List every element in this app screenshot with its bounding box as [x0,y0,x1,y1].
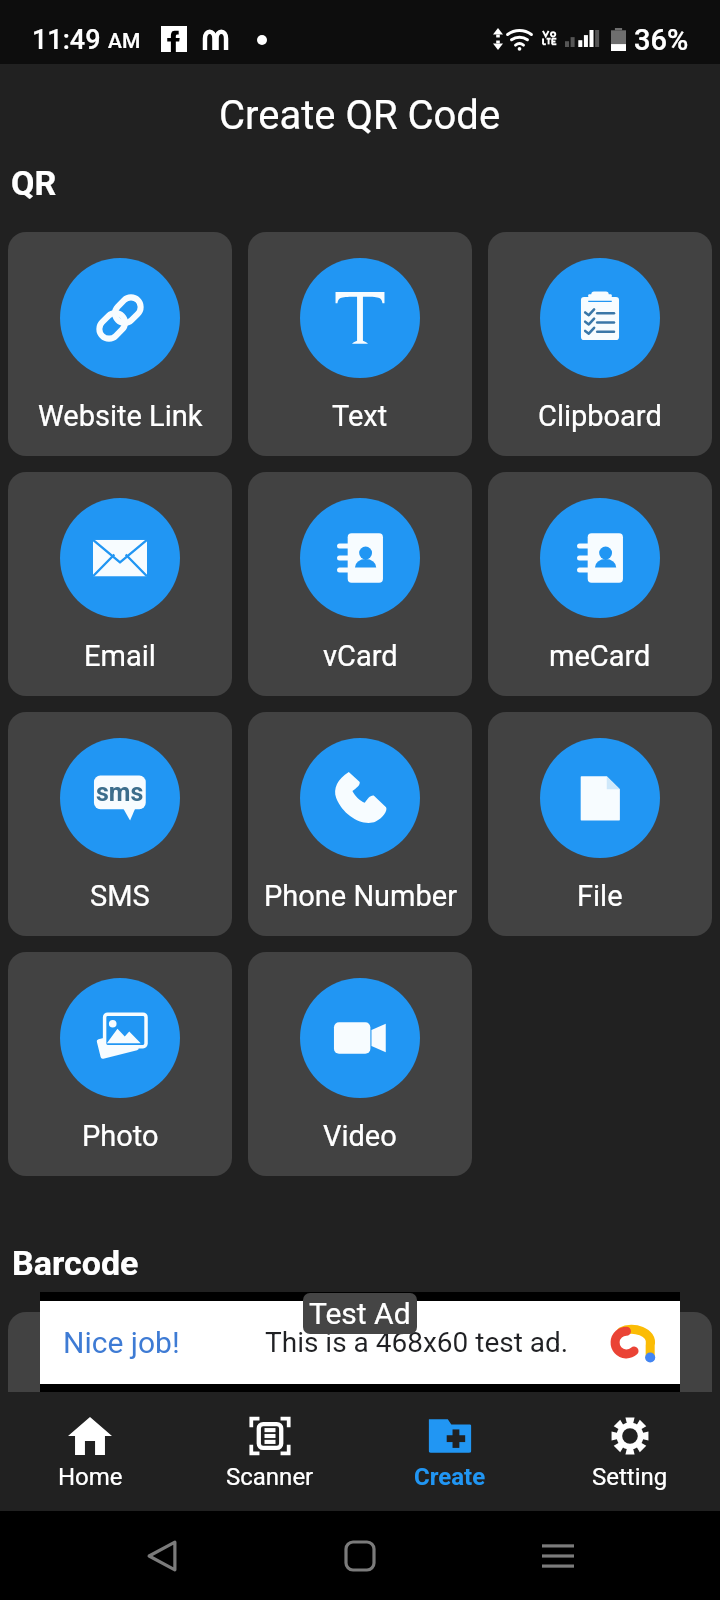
button[interactable] [488,1312,712,1536]
staticText: Test Ad [309,1296,411,1331]
button[interactable] [248,1312,472,1536]
button[interactable] [8,1312,232,1536]
staticText: Nice job! [63,1325,180,1360]
staticText: Create [414,1463,486,1491]
button[interactable]: sms [8,712,232,936]
button[interactable]: Create [360,1392,540,1511]
staticText: Barcode [12,1243,139,1283]
staticText: 11:49 [32,24,101,56]
button[interactable]: Scanner [180,1392,360,1511]
button[interactable]: Website Link [8,232,232,456]
staticText: SMS [90,879,150,913]
staticText: Text [332,399,388,433]
staticText: QR [11,163,57,203]
staticText: Phone Number [264,879,457,913]
staticText: Email [84,639,156,673]
staticText: AM [108,29,141,54]
staticText: sms [96,778,144,807]
staticText: Home [58,1463,123,1491]
button[interactable]: Text [248,232,472,456]
staticText: Scanner [226,1463,314,1491]
button[interactable]: Clipboard [488,232,712,456]
button[interactable]: Phone Number [248,712,472,936]
button[interactable]: Back [130,1524,194,1588]
staticText: Video [323,1119,397,1153]
staticText: Website Link [38,399,203,433]
button[interactable]: vCard [248,472,472,696]
button[interactable]: Email [8,472,232,696]
button[interactable]: File [488,712,712,936]
button[interactable]: Home [328,1524,392,1588]
button[interactable]: Recent apps [526,1524,590,1588]
staticText: Photo [82,1119,159,1153]
staticText: This is a 468x60 test ad. [265,1326,569,1359]
button[interactable]: meCard [488,472,712,696]
button[interactable]: Video [248,952,472,1176]
staticText: Setting [592,1463,668,1491]
staticText: vCard [323,639,398,673]
button[interactable]: Home [0,1392,180,1511]
staticText: meCard [549,639,651,673]
button[interactable]: Photo [8,952,232,1176]
staticText: Create QR Code [219,92,501,139]
staticText: Clipboard [538,399,662,433]
staticText: File [577,879,623,913]
button[interactable]: Setting [540,1392,720,1511]
staticText: 36% [634,23,689,57]
